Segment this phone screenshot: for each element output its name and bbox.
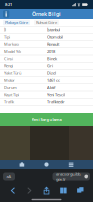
staticText: Örnek Bilgi bbox=[32, 10, 61, 18]
staticText: Trafik bbox=[4, 99, 14, 104]
staticText: Otomobil bbox=[47, 34, 63, 40]
button[interactable]: Sekmeler bbox=[76, 186, 84, 195]
staticText: Durum bbox=[4, 85, 17, 90]
staticText: 8:21 bbox=[5, 2, 12, 7]
staticText: Model Yılı bbox=[4, 49, 21, 54]
button[interactable]: Plakaya Göre bbox=[3, 20, 30, 25]
staticText: Aktif bbox=[47, 85, 55, 90]
staticText: Binek bbox=[47, 56, 57, 61]
staticText: Tipi bbox=[4, 34, 10, 40]
staticText: 2018 bbox=[47, 49, 55, 54]
staticText: aracsorgu.ibb.gov.tr bbox=[56, 171, 81, 182]
staticText: aA bbox=[6, 174, 11, 179]
staticText: Yeni Tescil bbox=[47, 92, 65, 97]
staticText: İl bbox=[4, 27, 6, 32]
staticText: Plakaya Göre bbox=[5, 20, 28, 25]
staticText: Cinsi bbox=[4, 56, 13, 61]
staticText: Yakıt Türü bbox=[4, 70, 21, 76]
staticText: İstanbul bbox=[47, 27, 60, 32]
button[interactable]: Yer İmleri bbox=[59, 186, 68, 195]
button[interactable]: Ara bbox=[19, 162, 25, 167]
button[interactable]: Bilgi bbox=[3, 10, 9, 18]
staticText: Rengi bbox=[4, 63, 13, 68]
button[interactable]: İleri bbox=[25, 186, 34, 195]
button[interactable]: Yeni Sorgulama bbox=[0, 113, 93, 126]
staticText: Kayıt Tipi bbox=[4, 92, 19, 97]
button[interactable]: Ruhsat Göre bbox=[34, 20, 59, 25]
staticText: Ruhsat Göre bbox=[36, 20, 57, 25]
staticText: Motor bbox=[4, 77, 15, 83]
staticText: 1461 cc bbox=[47, 77, 60, 83]
staticText: Gri bbox=[47, 63, 53, 68]
staticText: Renault bbox=[47, 41, 59, 47]
button[interactable]: Paylaş bbox=[42, 186, 51, 195]
staticText: Yeni Sorgulama bbox=[31, 117, 61, 122]
staticText: Markası bbox=[4, 41, 19, 47]
staticText: Trafiktedir bbox=[47, 99, 65, 104]
button[interactable]: Menü bbox=[68, 162, 74, 167]
button[interactable]: Geri bbox=[8, 186, 17, 195]
button[interactable]: Konum bbox=[44, 162, 49, 167]
staticText: Dizel bbox=[47, 70, 56, 76]
